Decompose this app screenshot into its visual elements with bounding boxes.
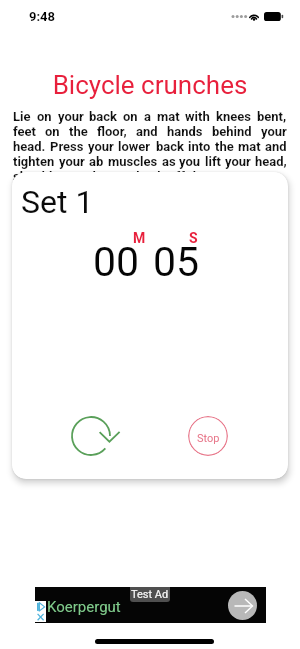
staticText: lower (118, 139, 151, 154)
staticText: and (71, 169, 96, 184)
staticText: M (133, 230, 146, 246)
button[interactable]: Koerpergut (35, 587, 266, 623)
staticText: on (123, 109, 138, 124)
staticText: on (37, 109, 52, 124)
staticText: and (265, 139, 287, 154)
staticText: 9:48 (29, 9, 56, 24)
staticText: muscles (108, 154, 158, 169)
staticText: Press (50, 139, 84, 154)
staticText: mat. (207, 169, 237, 184)
staticText: floor, (97, 124, 127, 139)
staticText: your (59, 154, 85, 169)
staticText: 00 (93, 238, 140, 286)
staticText: the (215, 139, 234, 154)
staticText: Bicycle crunches (0, 70, 300, 100)
staticText: Koerpergut (47, 598, 121, 616)
staticText: with (185, 109, 210, 124)
staticText: behind (212, 124, 252, 139)
staticText: 05 (153, 238, 200, 286)
button[interactable]: Restart timer (71, 406, 131, 466)
staticText: back (156, 139, 184, 154)
staticText: you (179, 154, 201, 169)
staticText: knees (216, 109, 251, 124)
staticText: lift (205, 154, 221, 169)
staticText: the (185, 169, 207, 184)
staticText: on (45, 124, 60, 139)
staticText: mat (238, 139, 261, 154)
staticText: the (69, 124, 88, 139)
staticText: mat (157, 109, 180, 124)
staticText: head, (255, 154, 287, 169)
staticText: hands (167, 124, 203, 139)
staticText: Test Ad (131, 588, 169, 601)
staticText: your (225, 154, 251, 169)
staticText: back (133, 169, 165, 184)
staticText: Set 1 (21, 183, 94, 221)
staticText: S (189, 230, 198, 246)
staticText: your (261, 124, 287, 139)
staticText: tighten (13, 154, 55, 169)
staticText: off (165, 169, 185, 184)
staticText: your (58, 109, 84, 124)
staticText: Stop (197, 432, 220, 445)
staticText: shoulders (13, 169, 71, 184)
staticText: into (188, 139, 211, 154)
staticText: back (89, 109, 117, 124)
staticText: ab (89, 154, 104, 169)
staticText: feet (13, 124, 36, 139)
button[interactable]: Open advertisement (228, 591, 257, 620)
staticText: bent, (257, 109, 287, 124)
staticText: head. (13, 139, 46, 154)
staticText: a (144, 109, 151, 124)
staticText: Lie (13, 109, 31, 124)
staticText: and (136, 124, 158, 139)
staticText: your (88, 139, 114, 154)
button[interactable]: Stop (188, 416, 228, 456)
staticText: upper (96, 169, 133, 184)
staticText: as (162, 154, 176, 169)
